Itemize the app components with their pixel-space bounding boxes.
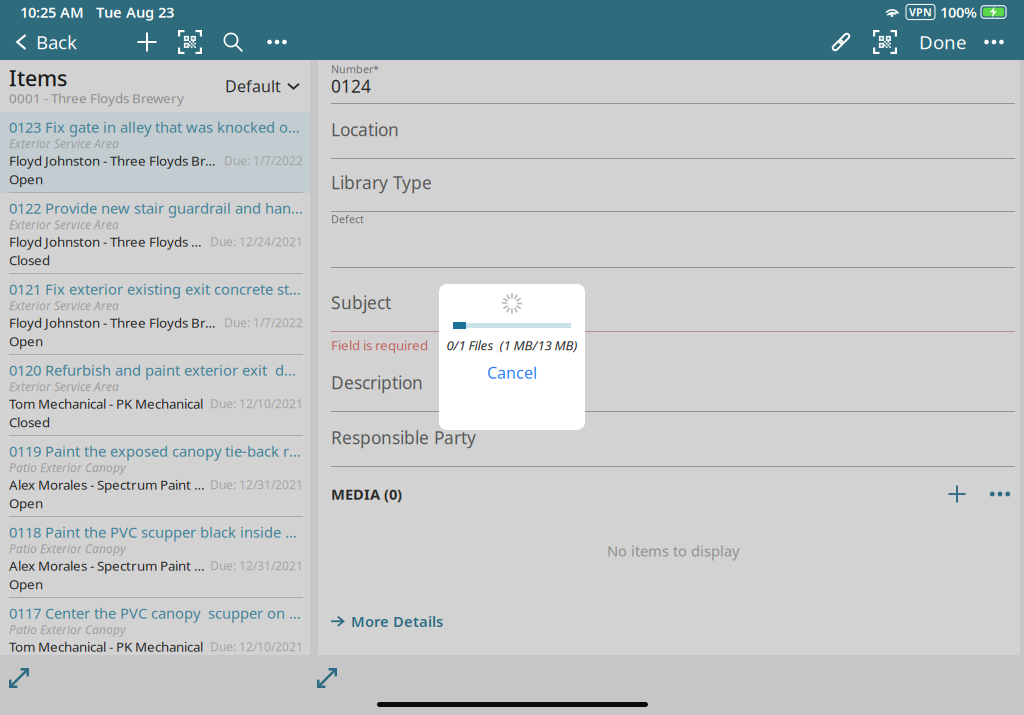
staticText: 0122 Provide new stair guardrail and han… bbox=[9, 198, 303, 218]
staticText: Floyd Johnston - Three Floyds Brewery bbox=[9, 314, 220, 331]
staticText: Due: 12/10/2021 bbox=[210, 638, 303, 654]
button[interactable]: 0120 Refurbish and paint exterior exit d… bbox=[0, 355, 310, 436]
staticText: Exterior Service Area bbox=[9, 216, 119, 232]
staticText: 100% bbox=[940, 2, 977, 22]
staticText: Closed bbox=[9, 413, 50, 431]
staticText: Responsible Party bbox=[331, 426, 476, 449]
button[interactable]: 0119 Paint the exposed canopy tie-back r… bbox=[0, 436, 310, 517]
staticText: Done bbox=[919, 30, 967, 54]
staticText: 0/1 Files (1 MB/13 MB) bbox=[446, 336, 577, 354]
staticText: 0119 Paint the exposed canopy tie-back r… bbox=[9, 441, 303, 461]
button[interactable]: Scan code bbox=[867, 24, 903, 60]
staticText: 0120 Refurbish and paint exterior exit d… bbox=[9, 360, 303, 380]
staticText: Patio Exterior Canopy bbox=[9, 459, 126, 475]
staticText: Back bbox=[36, 30, 77, 54]
staticText: Open bbox=[9, 575, 43, 593]
button[interactable]: More Details bbox=[331, 607, 443, 635]
staticText: Cancel bbox=[487, 362, 537, 383]
staticText: Due: 1/7/2022 bbox=[224, 152, 303, 168]
staticText: Closed bbox=[9, 656, 50, 674]
staticText: Location bbox=[331, 118, 399, 141]
staticText: Default bbox=[225, 75, 281, 97]
button[interactable]: 0123 Fix gate in alley that was knocked … bbox=[0, 112, 310, 193]
staticText: Number* bbox=[331, 62, 379, 76]
staticText: Open bbox=[9, 332, 43, 350]
button[interactable]: 0122 Provide new stair guardrail and han… bbox=[0, 193, 310, 274]
button[interactable]: Media options bbox=[985, 479, 1015, 509]
staticText: 0117 Center the PVC canopy scupper on th… bbox=[9, 603, 303, 623]
button[interactable]: More bbox=[259, 24, 295, 60]
staticText: Exterior Service Area bbox=[9, 135, 119, 151]
staticText: Library Type bbox=[331, 171, 432, 194]
button[interactable]: Search bbox=[215, 24, 251, 60]
staticText: 0124 bbox=[331, 74, 371, 97]
staticText: Closed bbox=[9, 251, 50, 269]
staticText: Due: 12/31/2021 bbox=[210, 476, 303, 492]
button[interactable]: Cancel bbox=[473, 358, 551, 387]
staticText: Exterior Service Area bbox=[9, 297, 119, 313]
staticText: Due: 12/10/2021 bbox=[210, 395, 303, 411]
staticText: Description bbox=[331, 371, 423, 394]
staticText: 0001 - Three Floyds Brewery bbox=[9, 89, 184, 107]
staticText: Due: 12/31/2021 bbox=[210, 557, 303, 573]
staticText: Open bbox=[9, 494, 43, 512]
button[interactable]: Scan code bbox=[172, 24, 208, 60]
staticText: 10:25 AM Tue Aug 23 bbox=[20, 2, 174, 22]
button[interactable]: 0118 Paint the PVC scupper black inside … bbox=[0, 517, 310, 598]
button[interactable]: 0117 Center the PVC canopy scupper on th… bbox=[0, 598, 310, 679]
staticText: 0118 Paint the PVC scupper black inside … bbox=[9, 522, 303, 542]
button[interactable]: Add item bbox=[129, 24, 165, 60]
staticText: Floyd Johnston - Three Floyds Brewery bbox=[9, 233, 206, 250]
staticText: Exterior Service Area bbox=[9, 378, 119, 394]
staticText: Patio Exterior Canopy bbox=[9, 540, 126, 556]
button[interactable]: Done bbox=[915, 24, 971, 60]
staticText: No items to display bbox=[607, 541, 739, 560]
button[interactable]: Back bbox=[6, 24, 85, 60]
button[interactable]: Expand detail bbox=[312, 663, 342, 693]
staticText: Field is required bbox=[331, 336, 428, 354]
staticText: Floyd Johnston - Three Floyds Brewery bbox=[9, 152, 220, 169]
staticText: Tom Mechanical - PK Mechanical bbox=[9, 638, 203, 655]
staticText: Alex Morales - Spectrum Paint Company bbox=[9, 476, 206, 493]
staticText: 0121 Fix exterior existing exit concrete… bbox=[9, 279, 303, 299]
staticText: Items bbox=[9, 64, 67, 92]
staticText: Open bbox=[9, 170, 43, 188]
staticText: 0123 Fix gate in alley that was knocked … bbox=[9, 117, 303, 137]
button[interactable]: Expand list bbox=[4, 663, 34, 693]
button[interactable]: Add media bbox=[942, 479, 972, 509]
staticText: MEDIA (0) bbox=[331, 484, 402, 504]
staticText: Patio Exterior Canopy bbox=[9, 621, 126, 637]
staticText: Alex Morales - Spectrum Paint Company bbox=[9, 557, 206, 574]
button[interactable]: Copy link bbox=[823, 24, 859, 60]
button[interactable]: More options bbox=[976, 24, 1012, 60]
staticText: Tom Mechanical - PK Mechanical bbox=[9, 395, 203, 412]
staticText: Due: 12/24/2021 bbox=[210, 233, 303, 249]
button[interactable]: Default bbox=[225, 75, 301, 97]
staticText: Defect bbox=[331, 212, 364, 226]
staticText: VPN bbox=[909, 5, 932, 19]
staticText: Due: 1/7/2022 bbox=[224, 314, 303, 330]
button[interactable]: 0121 Fix exterior existing exit concrete… bbox=[0, 274, 310, 355]
staticText: More Details bbox=[351, 611, 443, 631]
staticText: Subject bbox=[331, 291, 391, 314]
